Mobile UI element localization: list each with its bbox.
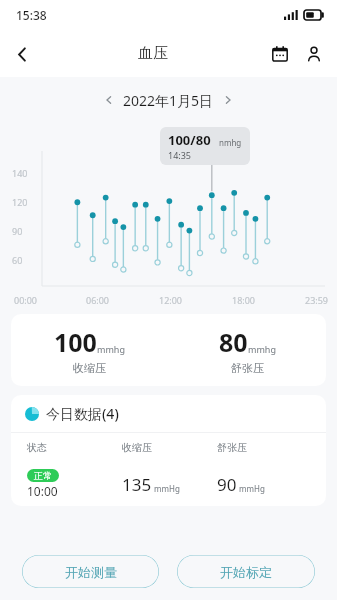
button[interactable]: Calendar bbox=[263, 37, 297, 71]
staticText: 今日数据(4) bbox=[46, 404, 119, 423]
staticText: 14:35 bbox=[168, 149, 192, 161]
staticText: 正常 bbox=[34, 470, 52, 481]
button[interactable]: 100 bbox=[11, 314, 326, 386]
staticText: mmHg bbox=[154, 483, 180, 494]
staticText: 12:00 bbox=[159, 294, 183, 306]
staticText: 15:38 bbox=[16, 7, 47, 23]
staticText: mmhg bbox=[248, 343, 276, 355]
staticText: mmhg bbox=[97, 343, 125, 355]
staticText: 23:59 bbox=[305, 294, 329, 306]
staticText: 60 bbox=[12, 254, 23, 266]
staticText: 舒张压 bbox=[217, 441, 312, 454]
staticText: 舒张压 bbox=[231, 361, 264, 375]
button[interactable]: Profile bbox=[297, 37, 331, 71]
staticText: 140 bbox=[12, 167, 28, 179]
button[interactable]: 正常 bbox=[27, 462, 312, 506]
button[interactable]: Previous day bbox=[97, 88, 121, 112]
staticText: 00:00 bbox=[14, 294, 38, 306]
staticText: 收缩压 bbox=[73, 361, 106, 375]
staticText: 80 bbox=[219, 325, 248, 359]
button[interactable]: 开始标定 bbox=[177, 555, 315, 588]
staticText: 血压 bbox=[138, 44, 168, 63]
staticText: 100 bbox=[54, 325, 97, 359]
staticText: 90 bbox=[12, 225, 23, 237]
staticText: 10:00 bbox=[27, 483, 58, 499]
button[interactable]: 今日数据(4) bbox=[25, 395, 326, 432]
staticText: 135 bbox=[122, 473, 152, 496]
button[interactable]: 开始测量 bbox=[22, 555, 159, 588]
staticText: 收缩压 bbox=[122, 441, 217, 454]
staticText: mmHg bbox=[239, 483, 265, 494]
staticText: 90 bbox=[217, 473, 237, 496]
staticText: 120 bbox=[12, 196, 28, 208]
staticText: 开始标定 bbox=[220, 564, 272, 580]
button[interactable]: Next day bbox=[216, 88, 240, 112]
staticText: 100/80 bbox=[168, 131, 211, 149]
staticText: 开始测量 bbox=[65, 564, 117, 580]
staticText: nmhg bbox=[219, 137, 242, 148]
staticText: 2022年1月5日 bbox=[123, 91, 214, 110]
button[interactable]: Back bbox=[0, 32, 44, 76]
staticText: 06:00 bbox=[86, 294, 110, 306]
staticText: 状态 bbox=[27, 441, 122, 454]
staticText: 18:00 bbox=[232, 294, 256, 306]
